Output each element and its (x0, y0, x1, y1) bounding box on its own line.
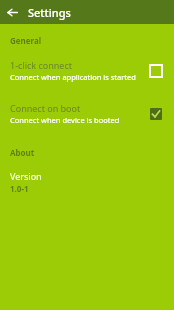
staticText: Connect when application is started (10, 72, 136, 82)
button[interactable]: Connect on boot (0, 98, 174, 129)
staticText: 1.0-1 (10, 183, 29, 194)
staticText: Version (10, 170, 42, 182)
button[interactable]: Version (0, 169, 174, 195)
button[interactable]: 1-click connect (0, 55, 174, 86)
staticText: 1-click connect (10, 59, 73, 71)
button[interactable]: Back (0, 0, 24, 24)
staticText: Connect on boot (10, 102, 81, 114)
staticText: General (10, 35, 42, 46)
staticText: About (10, 147, 35, 158)
staticText: Settings (28, 5, 71, 20)
staticText: Connect when device is booted (10, 115, 120, 125)
